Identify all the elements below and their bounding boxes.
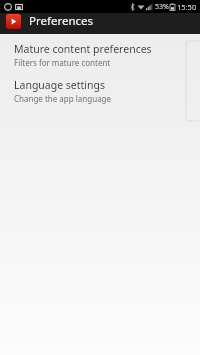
staticText: Mature content preferences	[14, 42, 152, 56]
button[interactable]: Language settings	[0, 73, 200, 109]
staticText: Preferences	[29, 13, 94, 29]
other: App icon	[6, 14, 21, 29]
staticText: 53%	[155, 2, 169, 12]
button[interactable]: Mature content preferences	[0, 37, 200, 73]
staticText: Filters for mature content	[14, 57, 111, 68]
staticText: Change the app language	[14, 93, 112, 104]
staticText: 15:50	[177, 2, 197, 12]
staticText: Language settings	[14, 78, 106, 92]
